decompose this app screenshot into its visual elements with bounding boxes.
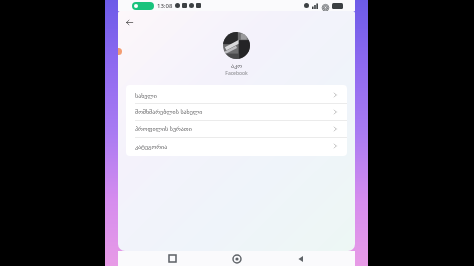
- button[interactable]: პროფილის სურათი: [126, 121, 347, 137]
- staticText: პროფილის სურათი: [135, 125, 192, 133]
- button[interactable]: Profile photo: [223, 32, 250, 59]
- button[interactable]: Back: [291, 251, 311, 266]
- button[interactable]: Recent apps: [162, 251, 182, 266]
- staticText: მომხმარებლის სახელი: [135, 108, 203, 116]
- button[interactable]: მომხმარებლის სახელი: [126, 104, 347, 120]
- staticText: აკო: [231, 62, 242, 69]
- button[interactable]: Home: [227, 251, 247, 266]
- button[interactable]: კატეგორია: [126, 138, 347, 154]
- button[interactable]: Back: [122, 15, 136, 29]
- staticText: კატეგორია: [135, 143, 168, 150]
- staticText: 13:08: [157, 2, 173, 10]
- button[interactable]: სახელი: [126, 87, 347, 103]
- staticText: Facebook: [225, 70, 248, 77]
- staticText: სახელი: [135, 92, 157, 99]
